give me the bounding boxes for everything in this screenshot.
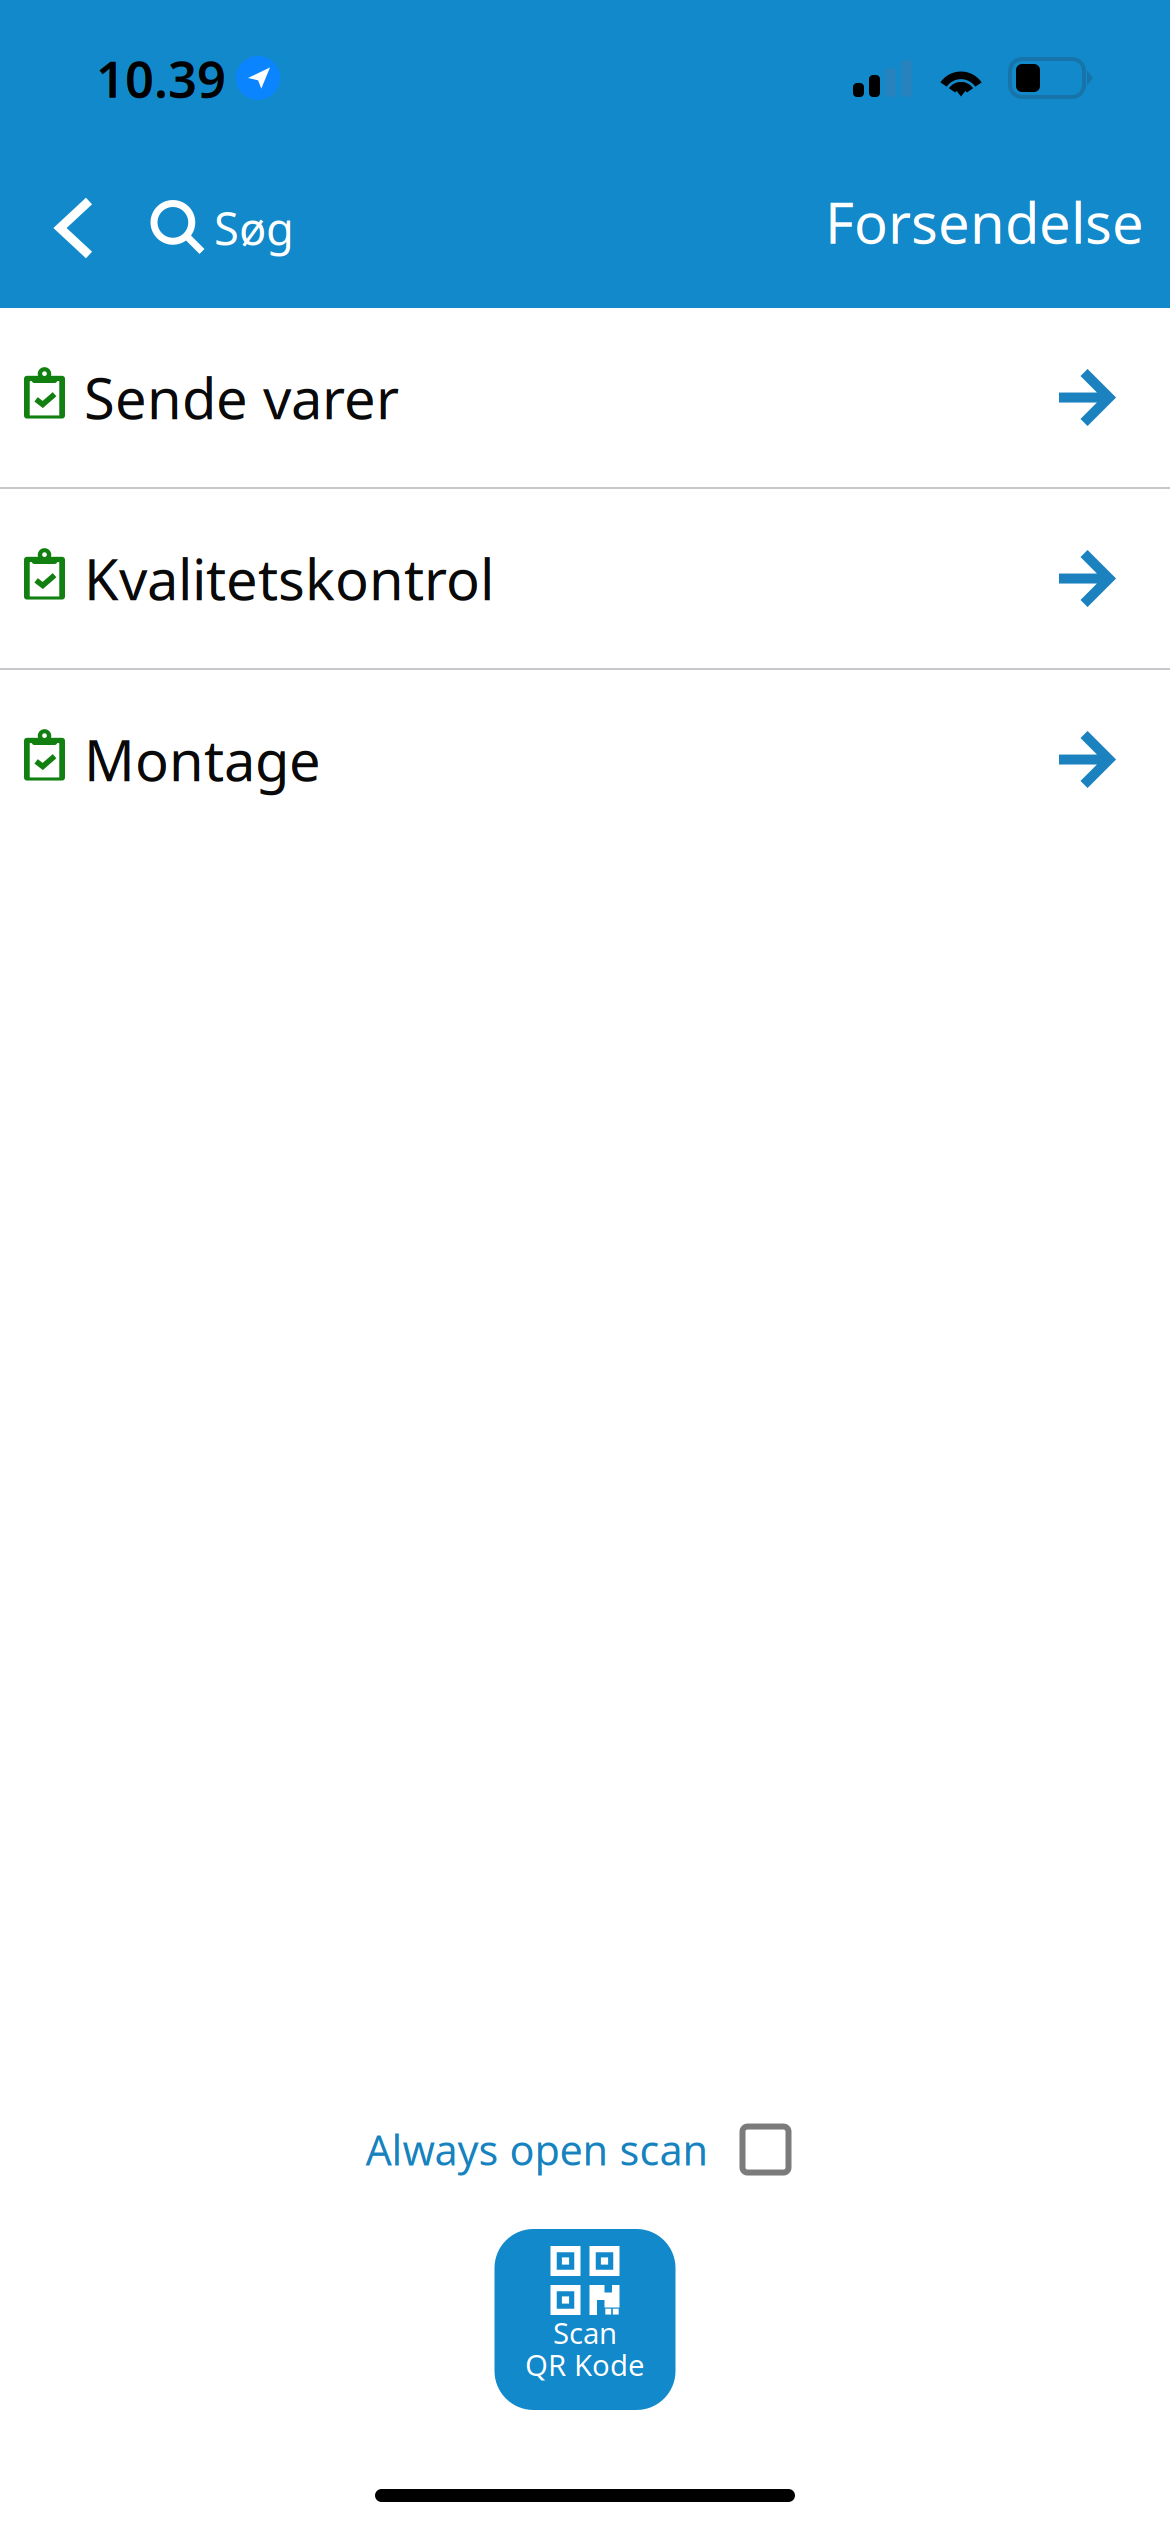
staticText: 10.39 <box>96 44 226 112</box>
button[interactable]: Kvalitetskontrol <box>0 489 1170 668</box>
staticText: Sende varer <box>84 360 399 435</box>
button[interactable]: Always open scan <box>373 2112 796 2187</box>
staticText: Always open scan <box>365 2122 708 2177</box>
button[interactable]: Montage <box>0 670 1170 849</box>
button[interactable]: Back <box>0 156 150 282</box>
button[interactable]: Søg <box>150 159 294 279</box>
staticText: Søg <box>214 198 294 258</box>
staticText: Forsendelse <box>825 185 1144 259</box>
button[interactable]: Scan <box>494 2229 675 2410</box>
staticText: Scan <box>553 2313 617 2352</box>
staticText: QR Kode <box>525 2345 645 2384</box>
staticText: Montage <box>84 722 321 797</box>
staticText: Kvalitetskontrol <box>84 541 494 616</box>
button[interactable]: Sende varer <box>0 308 1170 487</box>
